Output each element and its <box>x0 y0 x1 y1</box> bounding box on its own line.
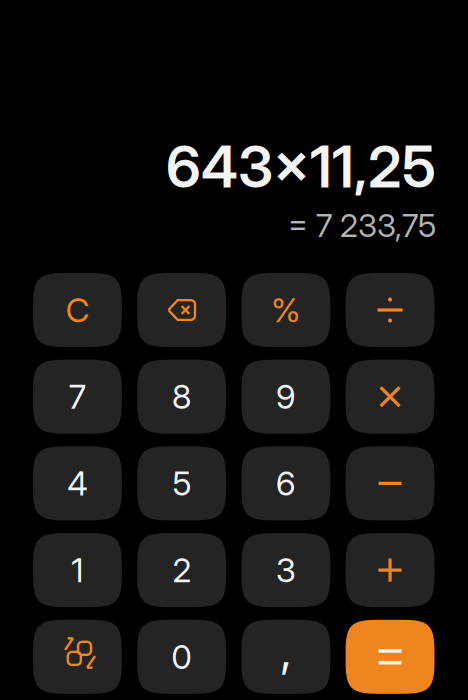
staticText: 5 <box>172 463 191 503</box>
staticText: 9 <box>276 376 296 417</box>
staticText: 7 <box>68 376 86 417</box>
staticText: 6 <box>276 463 296 503</box>
staticText: = 7 233,75 <box>288 206 436 245</box>
button[interactable]: Convert units <box>33 620 122 694</box>
button[interactable]: Multiply <box>346 360 434 434</box>
staticText: 1 <box>71 550 84 590</box>
button[interactable]: 8 <box>137 360 226 434</box>
button[interactable]: , <box>241 620 330 694</box>
button[interactable]: 0 <box>137 620 226 694</box>
staticText: 8 <box>172 376 192 417</box>
button[interactable]: Divide <box>346 273 434 347</box>
button[interactable]: Subtract <box>346 446 434 520</box>
staticText: 643×11,25 <box>166 132 436 201</box>
button[interactable]: % <box>241 273 330 347</box>
button[interactable]: 4 <box>33 446 122 520</box>
button[interactable]: 7 <box>33 360 122 434</box>
staticText: 3 <box>276 550 296 590</box>
staticText: , <box>279 623 292 678</box>
button[interactable]: Equals <box>346 620 434 694</box>
button[interactable]: 1 <box>33 533 122 607</box>
button[interactable]: C <box>33 273 122 347</box>
staticText: % <box>271 290 301 330</box>
staticText: 4 <box>67 463 88 503</box>
button[interactable]: 6 <box>241 446 330 520</box>
button[interactable]: Delete <box>137 273 226 347</box>
staticText: 0 <box>171 637 192 677</box>
button[interactable]: 5 <box>137 446 226 520</box>
staticText: 2 <box>172 550 191 590</box>
button[interactable]: 3 <box>241 533 330 607</box>
staticText: C <box>65 290 89 330</box>
button[interactable]: Add <box>346 533 434 607</box>
button[interactable]: 2 <box>137 533 226 607</box>
button[interactable]: 9 <box>241 360 330 434</box>
